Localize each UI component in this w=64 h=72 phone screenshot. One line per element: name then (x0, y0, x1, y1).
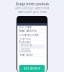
staticText: Email address (19, 29, 36, 33)
staticText: Select an option (21, 43, 33, 50)
staticText: Design better products (15, 2, 48, 6)
staticText: Industry (19, 40, 30, 44)
staticText: with a design system that (15, 6, 49, 10)
staticText: Country (19, 49, 30, 53)
staticText: Company name (19, 33, 39, 36)
staticText: scales with your team (18, 10, 46, 14)
staticText: Time zone (19, 53, 33, 57)
staticText: Get started (24, 67, 40, 70)
staticText: Team size (19, 37, 31, 40)
button[interactable]: Get started (17, 65, 47, 72)
staticText: Full name (19, 25, 32, 29)
